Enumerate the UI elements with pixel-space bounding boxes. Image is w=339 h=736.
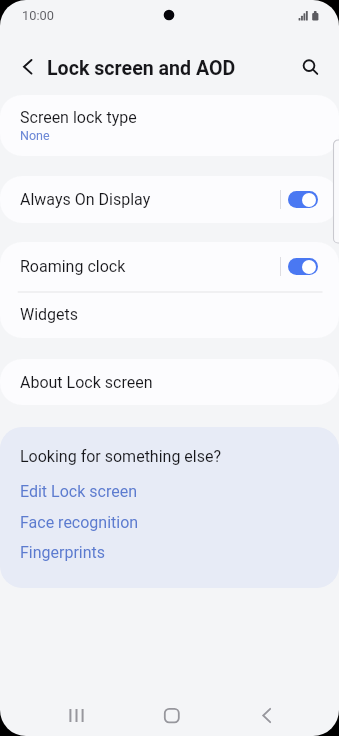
staticText: 10:00 (22, 8, 54, 23)
button[interactable]: Back (244, 684, 288, 728)
button[interactable]: Fingerprints (20, 543, 106, 562)
button[interactable]: Recent apps (54, 684, 98, 728)
staticText: Screen lock type (20, 108, 137, 127)
staticText: About Lock screen (20, 373, 153, 392)
button[interactable]: Always On Display (0, 176, 339, 223)
button[interactable]: Search (288, 45, 330, 87)
button[interactable]: Widgets (0, 290, 339, 338)
button[interactable]: Navigate up (7, 46, 49, 88)
button[interactable]: Screen lock type (0, 95, 339, 156)
staticText: Looking for something else? (20, 447, 222, 466)
button[interactable]: Home (149, 684, 193, 728)
staticText: Widgets (20, 305, 79, 324)
button[interactable]: Edit Lock screen (20, 482, 137, 501)
button[interactable]: Toggle Roaming clock (288, 258, 318, 275)
staticText: Always On Display (20, 190, 151, 209)
button[interactable]: Toggle Always On Display (288, 191, 318, 208)
staticText: Roaming clock (20, 257, 126, 276)
staticText: Lock screen and AOD (47, 57, 236, 80)
button[interactable]: Roaming clock (0, 242, 339, 290)
button[interactable]: Face recognition (20, 513, 139, 532)
staticText: None (20, 128, 50, 143)
button[interactable]: About Lock screen (0, 359, 339, 405)
